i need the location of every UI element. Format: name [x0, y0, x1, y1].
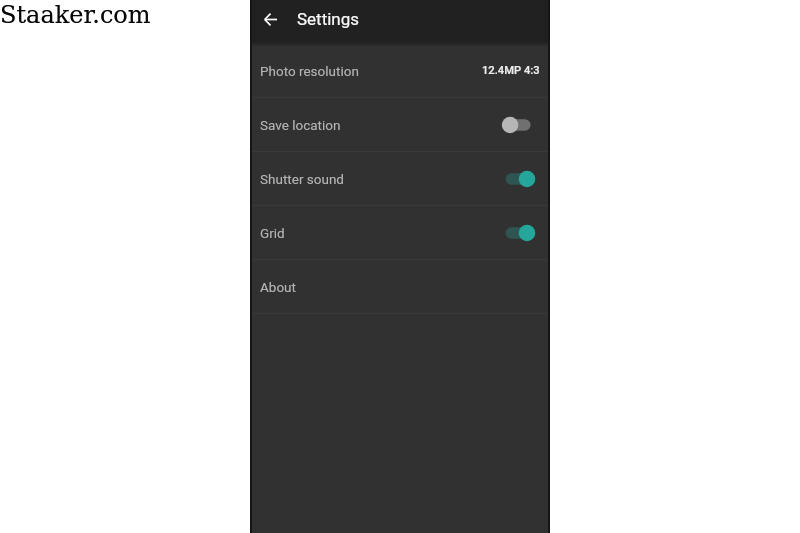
- staticText: Save location: [260, 117, 341, 133]
- staticText: 12.4MP 4:3: [482, 64, 540, 77]
- button[interactable]: Navigate back: [254, 3, 284, 35]
- staticText: Shutter sound: [260, 171, 344, 187]
- button[interactable]: Toggle on: [502, 223, 535, 243]
- staticText: Settings: [297, 9, 360, 29]
- staticText: Photo resolution: [260, 63, 359, 79]
- button[interactable]: Shutter sound: [250, 152, 549, 205]
- button[interactable]: Photo resolution: [250, 44, 549, 97]
- staticText: Grid: [260, 225, 285, 241]
- staticText: About: [260, 279, 296, 295]
- button[interactable]: Toggle on: [502, 169, 535, 189]
- staticText: Staaker.com: [0, 1, 151, 29]
- button[interactable]: About: [250, 260, 549, 313]
- button[interactable]: Grid: [250, 206, 549, 259]
- button[interactable]: Toggle off: [502, 115, 535, 135]
- staticText: Staaker.com: [0, 1, 151, 29]
- button[interactable]: Save location: [250, 98, 549, 151]
